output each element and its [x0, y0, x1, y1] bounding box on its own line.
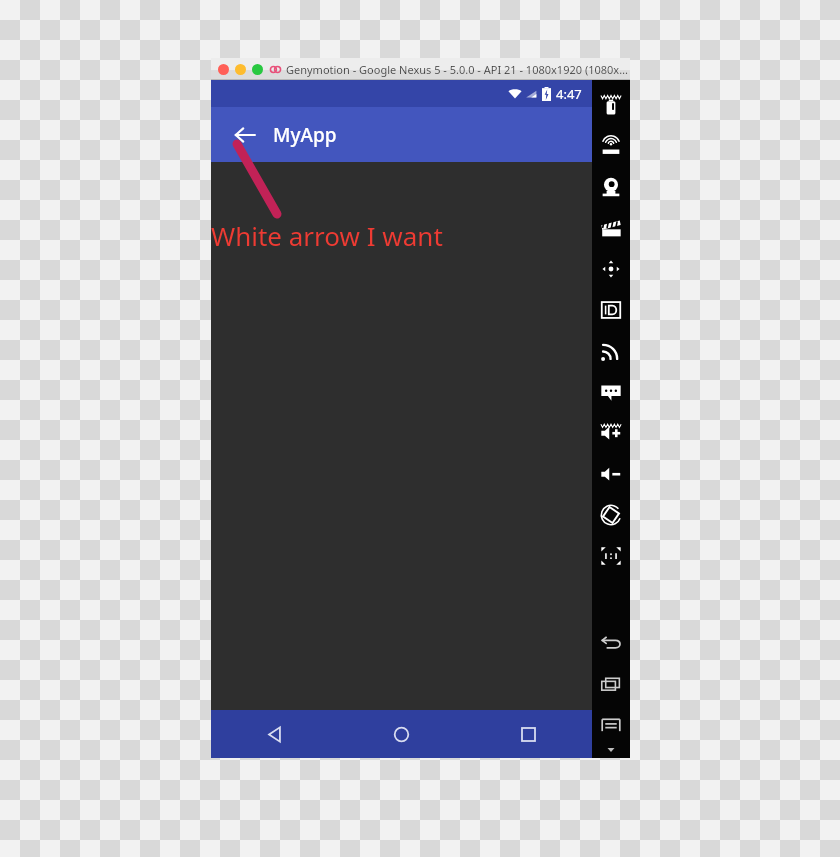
button[interactable]: Menu: [592, 704, 630, 745]
staticText: MyApp: [273, 122, 337, 148]
button[interactable]: Dpad: [592, 248, 630, 289]
button[interactable]: Back: [592, 622, 630, 663]
button[interactable]: Network: [592, 330, 630, 371]
button[interactable]: GPS: [592, 125, 630, 166]
button[interactable]: Home: [338, 710, 465, 758]
button[interactable]: Back: [211, 710, 338, 758]
button[interactable]: Recents: [592, 663, 630, 704]
button[interactable]: SMS: [592, 371, 630, 412]
button[interactable]: Volume down: [592, 453, 630, 494]
button[interactable]: Volume up: [592, 412, 630, 453]
staticText: White arrow I want: [211, 218, 443, 253]
staticText: Genymotion - Google Nexus 5 - 5.0.0 - AP…: [286, 62, 630, 77]
button[interactable]: Scale 1:1: [592, 535, 630, 576]
button[interactable]: ID: [592, 289, 630, 330]
button[interactable]: Rotate: [592, 494, 630, 535]
staticText: 4:47: [556, 85, 582, 103]
button[interactable]: Recent apps: [465, 710, 592, 758]
button[interactable]: Camera: [592, 166, 630, 207]
button[interactable]: Video: [592, 207, 630, 248]
button[interactable]: Battery: [592, 84, 630, 125]
button[interactable]: Navigate up: [225, 115, 265, 155]
